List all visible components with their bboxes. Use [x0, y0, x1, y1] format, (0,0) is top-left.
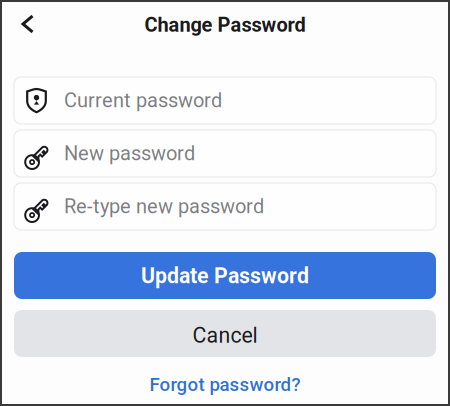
staticText: Current password [64, 89, 222, 112]
button[interactable]: Update Password [14, 252, 436, 299]
button[interactable]: Back [0, 1, 51, 46]
button[interactable]: Current password [14, 77, 436, 124]
button[interactable]: Forgot password? [14, 369, 436, 395]
staticText: New password [64, 142, 195, 165]
button[interactable]: Cancel [14, 310, 436, 357]
button[interactable]: Re-type new password [14, 183, 436, 230]
staticText: Change Password [144, 13, 305, 37]
staticText: Cancel [192, 323, 257, 348]
button[interactable]: New password [14, 130, 436, 177]
staticText: Forgot password? [149, 374, 300, 395]
staticText: Update Password [141, 263, 309, 288]
staticText: Re-type new password [64, 195, 264, 218]
